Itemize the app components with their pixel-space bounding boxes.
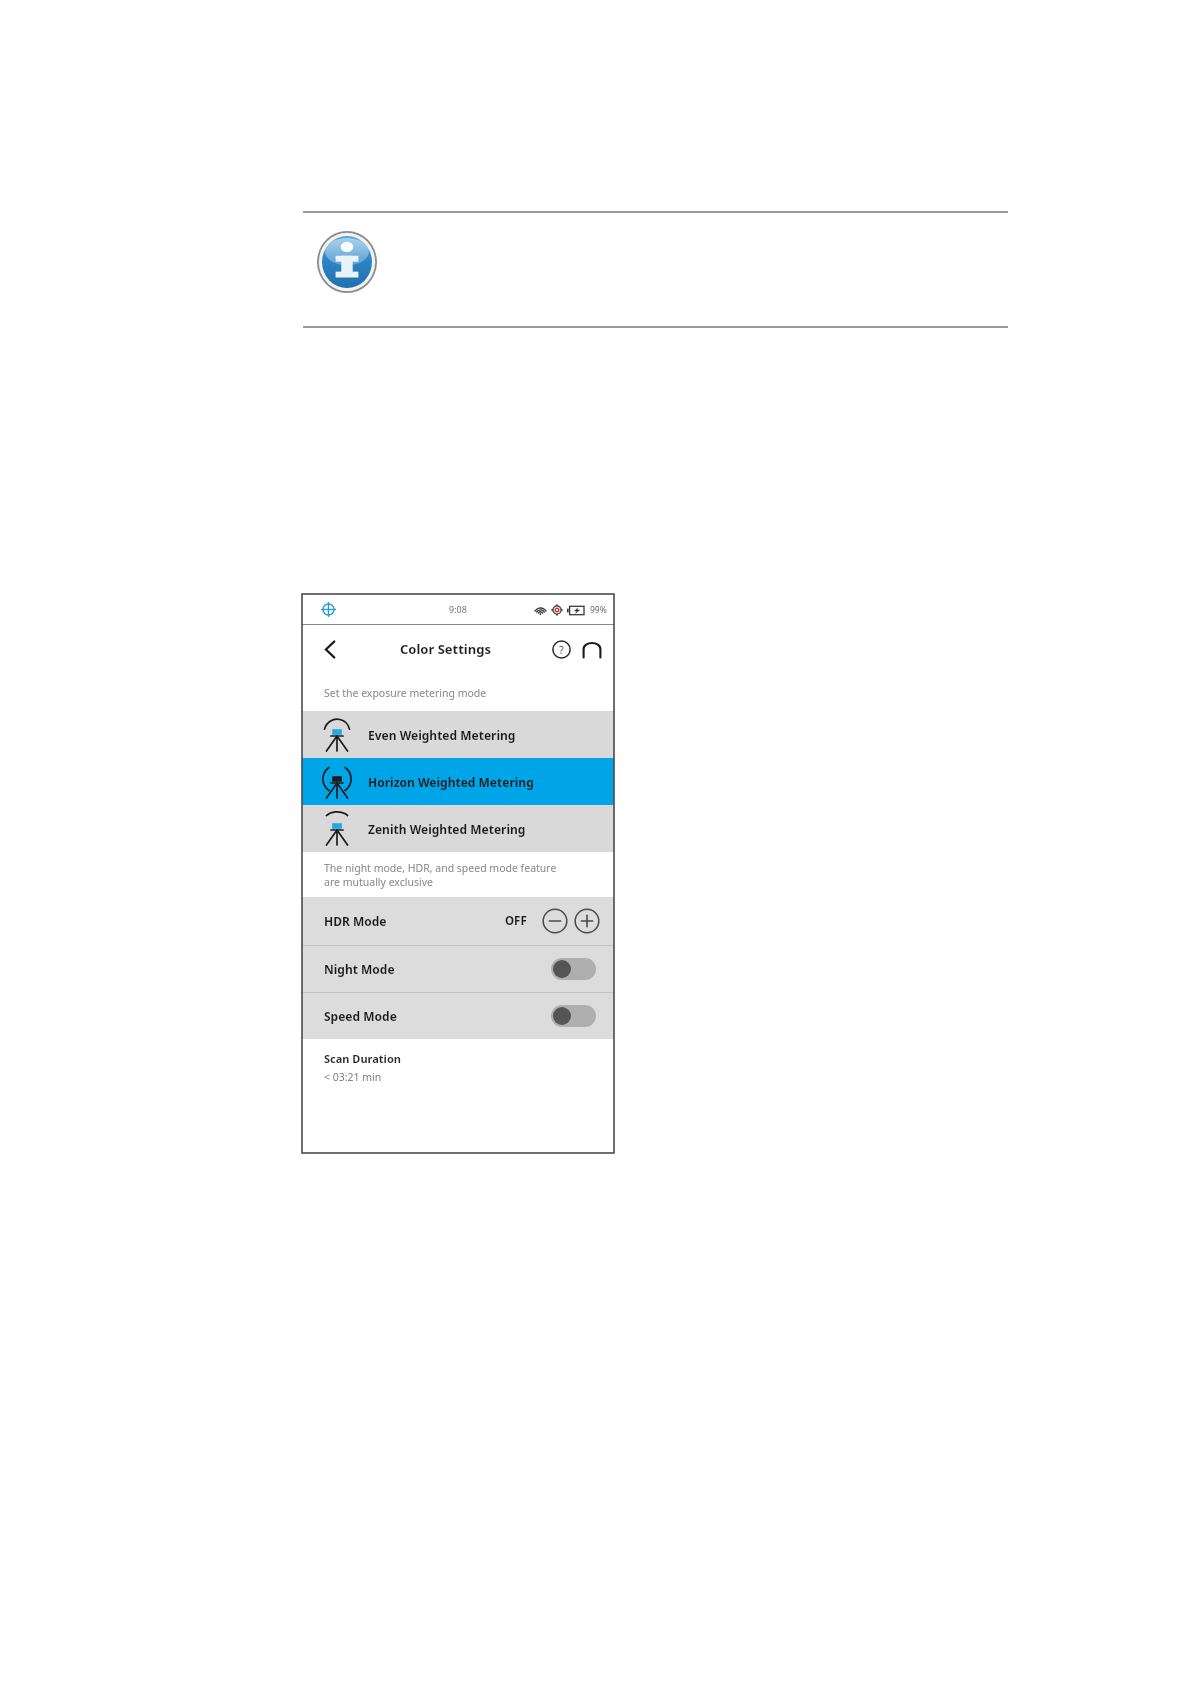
staticText: Scan Duration xyxy=(324,1051,401,1066)
staticText: OFF xyxy=(505,913,527,929)
staticText: The night mode, HDR, and speed mode feat… xyxy=(324,861,557,889)
button[interactable]: Home xyxy=(579,636,605,662)
staticText: ? xyxy=(559,642,564,657)
button[interactable]: Increase xyxy=(574,908,600,934)
staticText: HDR Mode xyxy=(324,913,387,929)
button[interactable]: Horizon Weighted Metering xyxy=(302,758,614,805)
button[interactable]: Even Weighted Metering xyxy=(302,711,614,758)
staticText: Color Settings xyxy=(400,640,491,658)
button[interactable]: Zenith Weighted Metering xyxy=(302,805,614,852)
staticText: 9:08 xyxy=(449,603,467,615)
staticText: Even Weighted Metering xyxy=(368,727,516,743)
staticText: Night Mode xyxy=(324,961,395,977)
button[interactable]: Night Mode xyxy=(302,946,614,992)
button[interactable]: Back xyxy=(313,632,347,666)
staticText: Horizon Weighted Metering xyxy=(368,774,534,790)
button[interactable]: Decrease xyxy=(542,908,568,934)
button[interactable]: Help xyxy=(548,636,574,662)
staticText: Zenith Weighted Metering xyxy=(368,821,526,837)
staticText: Speed Mode xyxy=(324,1008,397,1024)
staticText: < 03:21 min xyxy=(324,1070,382,1084)
button[interactable]: Speed Mode xyxy=(302,993,614,1039)
staticText: 99% xyxy=(590,604,607,616)
staticText: Set the exposure metering mode xyxy=(324,686,487,700)
